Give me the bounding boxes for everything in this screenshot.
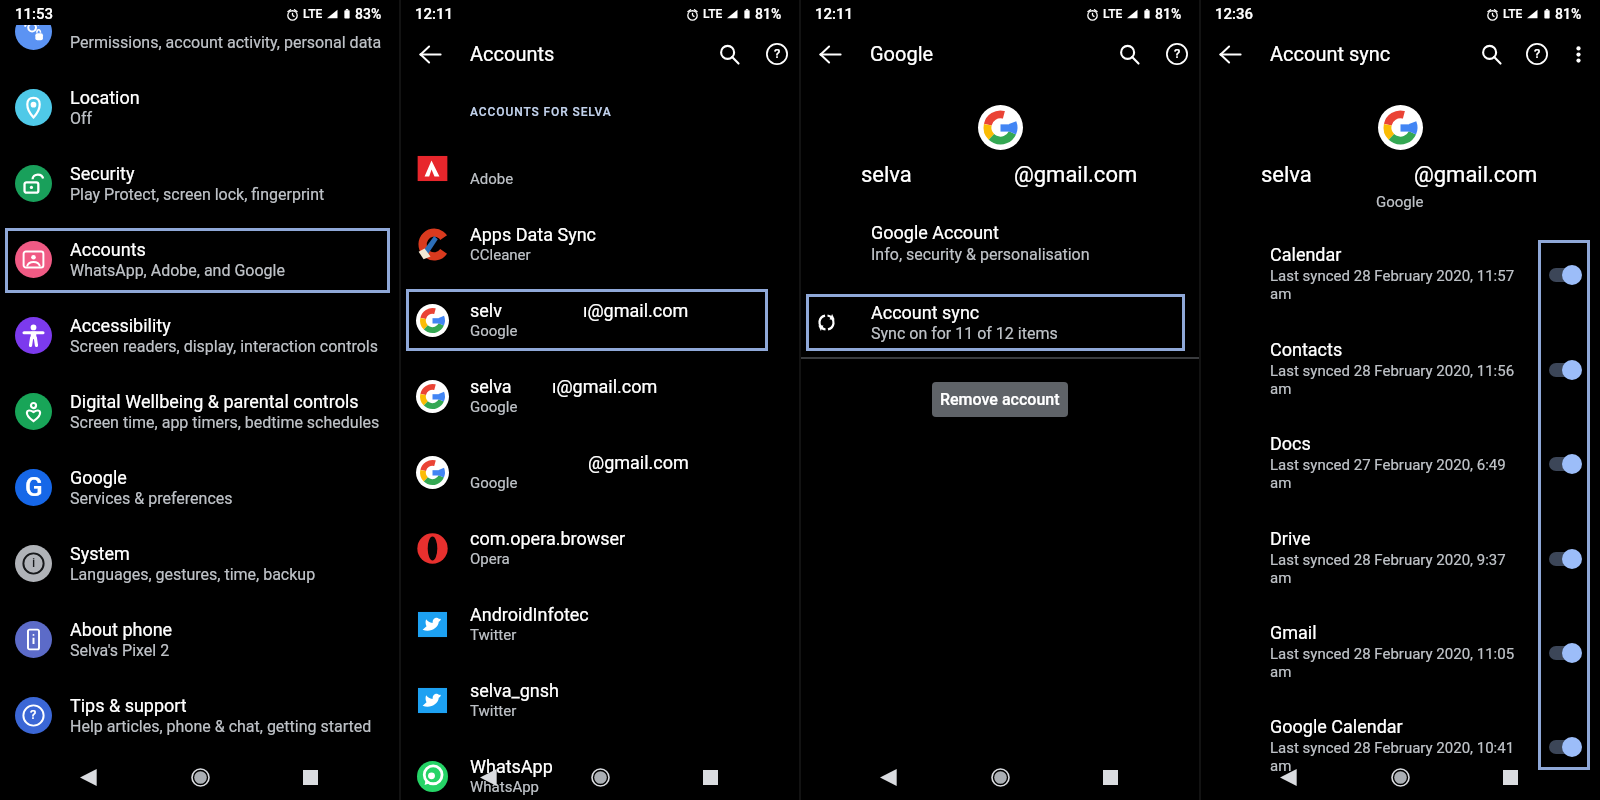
- staticText: com.opera.browser: [470, 528, 626, 549]
- staticText: Help articles, phone & chat, getting sta…: [70, 717, 372, 736]
- staticText: Last synced 28 February 2020, 9:37 am: [1270, 551, 1506, 587]
- staticText: Last synced 28 February 2020, 11:57 am: [1270, 267, 1515, 303]
- staticText: Opera: [470, 550, 510, 568]
- staticText: CCleaner: [470, 246, 531, 264]
- button[interactable]: Back: [471, 760, 505, 794]
- staticText: 12:11: [815, 5, 854, 23]
- button[interactable]: Adobe: [400, 130, 800, 206]
- staticText: Off: [70, 109, 93, 128]
- staticText: WhatsApp: [470, 756, 553, 777]
- staticText: 81%: [1155, 6, 1182, 22]
- button[interactable]: Recent apps: [293, 760, 327, 794]
- button[interactable]: i: [0, 525, 400, 601]
- button[interactable]: Toggle sync: [1549, 453, 1582, 475]
- staticText: Docs: [1270, 433, 1311, 454]
- staticText: 12:36: [1215, 5, 1254, 23]
- staticText: Google: [870, 42, 934, 65]
- staticText: ?: [30, 707, 37, 722]
- staticText: About phone: [70, 619, 173, 640]
- staticText: Adobe: [470, 170, 514, 188]
- button[interactable]: Home: [583, 760, 617, 794]
- staticText: ?: [1534, 46, 1541, 61]
- button[interactable]: Recent apps: [1093, 760, 1127, 794]
- button[interactable]: Location: [0, 69, 400, 145]
- staticText: Drive: [1270, 528, 1311, 549]
- staticText: Google: [470, 322, 518, 340]
- button[interactable]: Home: [183, 760, 217, 794]
- button[interactable]: [806, 294, 1185, 351]
- button[interactable]: Accounts: [0, 221, 400, 297]
- button[interactable]: [1538, 240, 1590, 770]
- button[interactable]: Help: [761, 38, 793, 70]
- button[interactable]: Toggle sync: [1549, 264, 1582, 286]
- button[interactable]: @gmail.com: [400, 434, 800, 510]
- button[interactable]: selv: [400, 282, 800, 358]
- button[interactable]: Remove account: [932, 382, 1068, 417]
- staticText: Last synced 27 February 2020, 6:49 am: [1270, 456, 1506, 492]
- staticText: ı@gmail.com: [583, 300, 689, 321]
- button[interactable]: Back: [815, 39, 845, 69]
- button[interactable]: Back: [415, 39, 445, 69]
- button[interactable]: Account sync: [800, 294, 1200, 350]
- button[interactable]: Accessibility: [0, 297, 400, 373]
- staticText: LTE: [703, 7, 723, 21]
- staticText: 83%: [355, 6, 382, 22]
- button[interactable]: Permissions, account activity, personal …: [0, 0, 400, 69]
- staticText: Permissions, account activity, personal …: [70, 33, 382, 52]
- staticText: Languages, gestures, time, backup: [70, 565, 316, 584]
- staticText: Account sync: [1270, 42, 1391, 65]
- staticText: Tips & support: [70, 695, 187, 716]
- button[interactable]: Apps Data Sync: [400, 206, 800, 282]
- button[interactable]: G: [0, 449, 400, 525]
- button[interactable]: Recent apps: [1493, 760, 1527, 794]
- button[interactable]: Search: [1475, 38, 1507, 70]
- button[interactable]: About phone: [0, 601, 400, 677]
- staticText: selva: [1261, 162, 1312, 188]
- staticText: selva: [470, 376, 512, 397]
- staticText: System: [70, 543, 130, 564]
- staticText: LTE: [1503, 7, 1523, 21]
- staticText: selv: [470, 300, 502, 321]
- button[interactable]: Toggle sync: [1549, 736, 1582, 758]
- button[interactable]: Home: [1383, 760, 1417, 794]
- staticText: @gmail.com: [1414, 162, 1538, 188]
- button[interactable]: [5, 228, 390, 293]
- staticText: Calendar: [1270, 244, 1342, 265]
- staticText: 81%: [755, 6, 782, 22]
- button[interactable]: selva_gnsh: [400, 662, 800, 738]
- staticText: Twitter: [470, 626, 517, 644]
- button[interactable]: [406, 289, 768, 351]
- button[interactable]: selva: [400, 358, 800, 434]
- button[interactable]: Security: [0, 145, 400, 221]
- button[interactable]: Toggle sync: [1549, 642, 1582, 664]
- button[interactable]: Back: [1215, 39, 1245, 69]
- staticText: WhatsApp: [470, 778, 540, 796]
- staticText: 81%: [1555, 6, 1582, 22]
- button[interactable]: WhatsApp: [400, 738, 800, 800]
- button[interactable]: com.opera.browser: [400, 510, 800, 586]
- button[interactable]: ?: [0, 677, 400, 753]
- button[interactable]: AndroidInfotec: [400, 586, 800, 662]
- button[interactable]: Help: [1161, 38, 1193, 70]
- button[interactable]: Home: [983, 760, 1017, 794]
- button[interactable]: More options: [1563, 39, 1593, 69]
- button[interactable]: Recent apps: [693, 760, 727, 794]
- button[interactable]: Digital Wellbeing & parental controls: [0, 373, 400, 449]
- staticText: Accessibility: [70, 315, 171, 336]
- staticText: LTE: [1103, 7, 1123, 21]
- staticText: ACCOUNTS FOR SELVA: [470, 105, 612, 119]
- staticText: Play Protect, screen lock, fingerprint: [70, 185, 325, 204]
- button[interactable]: Back: [71, 760, 105, 794]
- staticText: 12:11: [415, 5, 454, 23]
- button[interactable]: Back: [871, 760, 905, 794]
- staticText: LTE: [303, 7, 323, 21]
- button[interactable]: Help: [1521, 38, 1553, 70]
- staticText: Digital Wellbeing & parental controls: [70, 391, 359, 412]
- button[interactable]: Toggle sync: [1549, 359, 1582, 381]
- button[interactable]: Back: [1271, 760, 1305, 794]
- staticText: Google Calendar: [1270, 716, 1403, 737]
- button[interactable]: Search: [1113, 38, 1145, 70]
- button[interactable]: Toggle sync: [1549, 548, 1582, 570]
- staticText: Google: [470, 474, 518, 492]
- button[interactable]: Search: [713, 38, 745, 70]
